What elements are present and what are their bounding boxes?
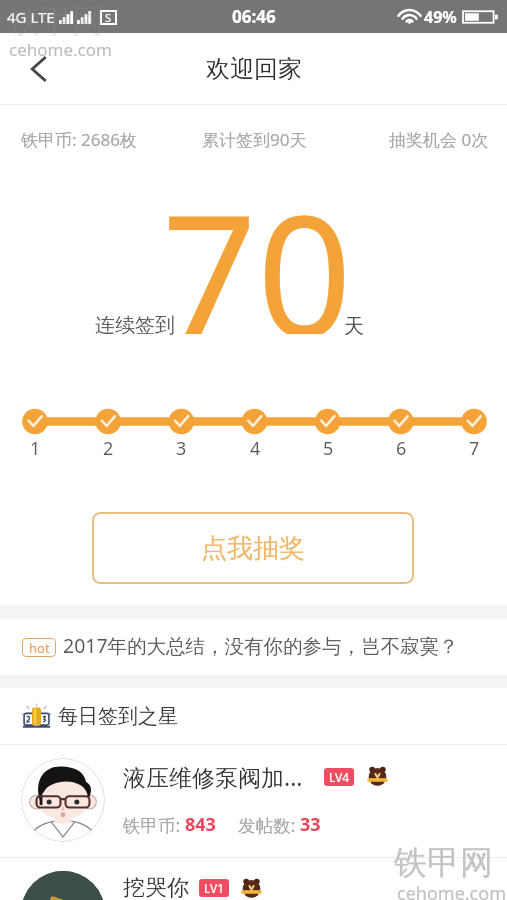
staticText: 天 xyxy=(344,314,364,339)
staticText: 49% xyxy=(424,6,457,28)
button[interactable]: 点我抽奖 xyxy=(92,512,414,584)
staticText: 5 xyxy=(323,436,334,458)
staticText: 每日签到之星 xyxy=(58,704,178,729)
staticText: 点我抽奖 xyxy=(201,532,305,565)
staticText: 铁甲网 xyxy=(8,1,104,41)
staticText: 2 xyxy=(103,436,114,458)
staticText: 铁甲币: xyxy=(123,813,181,837)
staticText: cehome.com xyxy=(397,881,506,900)
staticText: 发帖数: xyxy=(238,813,296,837)
staticText: 液压维修泵阀加... xyxy=(123,761,303,792)
staticText: S xyxy=(105,10,112,25)
staticText: 铁甲网 xyxy=(394,842,493,884)
staticText: cehome.com xyxy=(9,38,112,61)
staticText: 70 xyxy=(162,159,352,334)
staticText: LV1 xyxy=(204,880,225,896)
staticText: LV4 xyxy=(329,769,350,785)
staticText: 2017年的大总结，没有你的参与，岂不寂寞？ xyxy=(63,632,459,659)
staticText: 4G LTE xyxy=(7,7,55,27)
staticText: 7 xyxy=(469,436,480,458)
button[interactable]: 挖哭你 xyxy=(0,858,507,900)
staticText: 铁甲币: 2686枚 xyxy=(21,128,137,151)
button[interactable]: hot xyxy=(0,619,507,675)
staticText: hot xyxy=(29,639,50,657)
staticText: 抽奖机会 0次 xyxy=(389,128,489,151)
staticText: 843 xyxy=(185,812,216,837)
staticText: 33 xyxy=(300,812,321,837)
staticText: 3 xyxy=(176,436,187,458)
button[interactable]: Back xyxy=(16,46,62,92)
staticText: 挖哭你 xyxy=(123,874,189,900)
staticText: 连续签到 xyxy=(95,313,175,338)
staticText: 6 xyxy=(396,436,407,458)
staticText: 欢迎回家 xyxy=(206,54,302,84)
staticText: 4 xyxy=(250,436,261,458)
button[interactable]: 液压维修泵阀加... xyxy=(0,745,507,857)
staticText: 06:46 xyxy=(232,5,276,28)
staticText: 1 xyxy=(30,436,41,458)
staticText: 累计签到90天 xyxy=(202,128,307,151)
